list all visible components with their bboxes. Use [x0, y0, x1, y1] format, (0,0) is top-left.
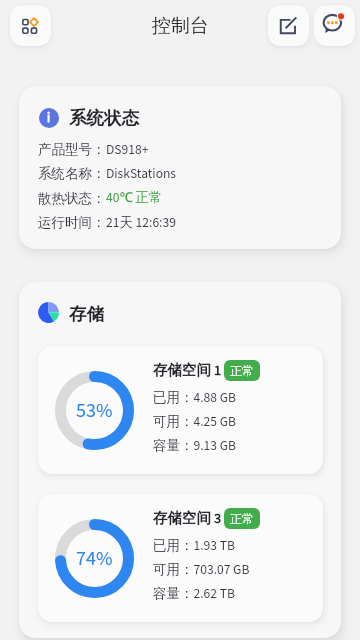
- staticText: 74%: [76, 545, 113, 573]
- staticText: 已用：4.88 GB: [153, 388, 236, 407]
- button[interactable]: Apps: [10, 5, 51, 46]
- button[interactable]: i: [19, 86, 341, 249]
- staticText: 产品型号：: [38, 141, 106, 158]
- staticText: 正常: [230, 363, 254, 378]
- staticText: DS918+: [106, 140, 149, 159]
- staticText: 散热状态：: [38, 190, 106, 207]
- button[interactable]: Messages: [314, 5, 355, 46]
- staticText: i: [47, 109, 51, 128]
- staticText: 系统名称：: [38, 165, 106, 182]
- staticText: 存储空间 1: [153, 360, 222, 381]
- staticText: 运行时间：: [38, 214, 106, 231]
- staticText: 正常: [230, 511, 254, 526]
- button[interactable]: Edit: [268, 5, 309, 46]
- staticText: 21天 12:6:39: [106, 213, 176, 232]
- staticText: 53%: [76, 397, 113, 425]
- staticText: 控制台: [152, 14, 209, 38]
- staticText: 容量：9.13 GB: [153, 436, 236, 455]
- staticText: 存储空间 3: [153, 508, 222, 529]
- staticText: 系统状态: [69, 107, 139, 129]
- staticText: DiskStations: [106, 164, 176, 183]
- staticText: 容量：2.62 TB: [153, 584, 235, 603]
- staticText: 存储: [69, 303, 104, 325]
- staticText: 可用：703.07 GB: [153, 560, 250, 579]
- staticText: 可用：4.25 GB: [153, 412, 236, 431]
- button[interactable]: 53%: [38, 346, 323, 474]
- staticText: 已用：1.93 TB: [153, 536, 235, 555]
- button[interactable]: 74%: [38, 494, 323, 622]
- staticText: 40℃ 正常: [106, 188, 163, 208]
